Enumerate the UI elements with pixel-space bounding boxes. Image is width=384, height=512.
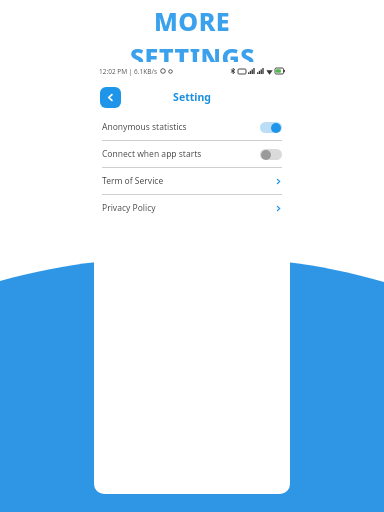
button[interactable]: Toggle xyxy=(260,122,282,133)
staticText: SETTINGS xyxy=(130,40,255,74)
staticText: Connect when app starts xyxy=(102,148,202,160)
staticText: Privacy Policy xyxy=(102,202,156,214)
staticText: MORE xyxy=(154,4,231,38)
staticText: Term of Service xyxy=(102,175,164,187)
button[interactable]: Anonymous statistics xyxy=(94,114,290,140)
button[interactable]: Back xyxy=(100,87,121,108)
button[interactable]: Term of Service xyxy=(94,168,290,194)
staticText: 12:02 PM | 6.1KB/s xyxy=(99,67,158,76)
staticText: Setting xyxy=(173,90,211,104)
button[interactable]: Connect when app starts xyxy=(94,141,290,167)
staticText: Anonymous statistics xyxy=(102,121,187,133)
button[interactable]: Privacy Policy xyxy=(94,195,290,221)
button[interactable]: Toggle xyxy=(260,149,282,160)
